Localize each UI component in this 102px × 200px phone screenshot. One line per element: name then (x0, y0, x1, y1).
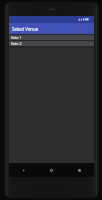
staticText: Gate 2 (11, 41, 22, 46)
button[interactable]: Recent apps (74, 165, 84, 175)
staticText: Select Venue (12, 26, 39, 32)
button[interactable]: Gate 2 (9, 41, 94, 46)
button[interactable]: Back (18, 165, 28, 175)
staticText: Gate 1 (11, 35, 22, 40)
button[interactable]: Home (46, 165, 56, 175)
button[interactable]: Gate 1 (9, 35, 94, 40)
button[interactable]: Select Venue (9, 23, 94, 34)
